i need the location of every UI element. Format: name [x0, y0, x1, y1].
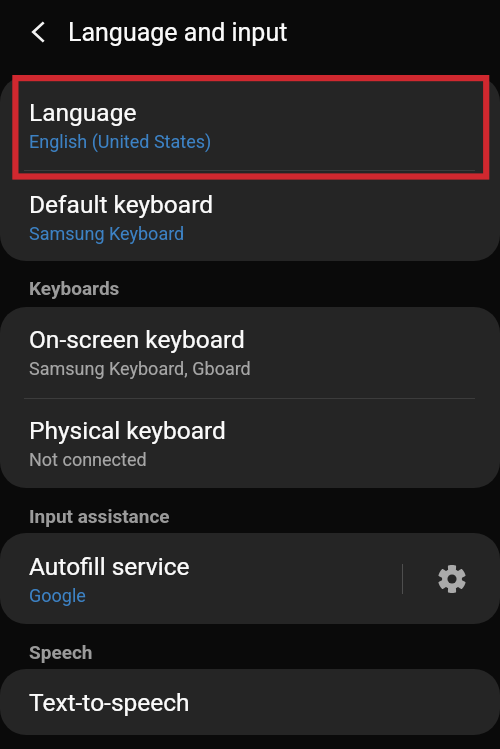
button[interactable]: Language	[0, 76, 500, 170]
staticText: Speech	[29, 641, 93, 663]
staticText: Samsung Keyboard, Gboard	[29, 358, 251, 379]
staticText: Language and input	[68, 18, 288, 47]
button[interactable]: Text-to-speech	[0, 669, 500, 735]
button[interactable]: On-screen keyboard	[0, 307, 500, 398]
staticText: Physical keyboard	[29, 416, 226, 445]
button[interactable]: Physical keyboard	[0, 399, 500, 488]
staticText: English (United States)	[29, 131, 212, 152]
button[interactable]: Autofill service	[0, 533, 500, 624]
staticText: Text-to-speech	[29, 688, 190, 717]
staticText: Keyboards	[29, 277, 120, 299]
staticText: Samsung Keyboard	[29, 223, 185, 244]
button[interactable]: Back	[16, 10, 60, 54]
staticText: Language	[29, 98, 137, 127]
staticText: Autofill service	[29, 552, 190, 581]
staticText: Input assistance	[29, 505, 170, 527]
staticText: Google	[29, 585, 86, 606]
button[interactable]: Default keyboard	[0, 171, 500, 261]
button[interactable]: Autofill service settings	[403, 533, 500, 624]
staticText: Not connected	[29, 449, 147, 470]
staticText: Default keyboard	[29, 190, 214, 219]
staticText: On-screen keyboard	[29, 325, 245, 354]
